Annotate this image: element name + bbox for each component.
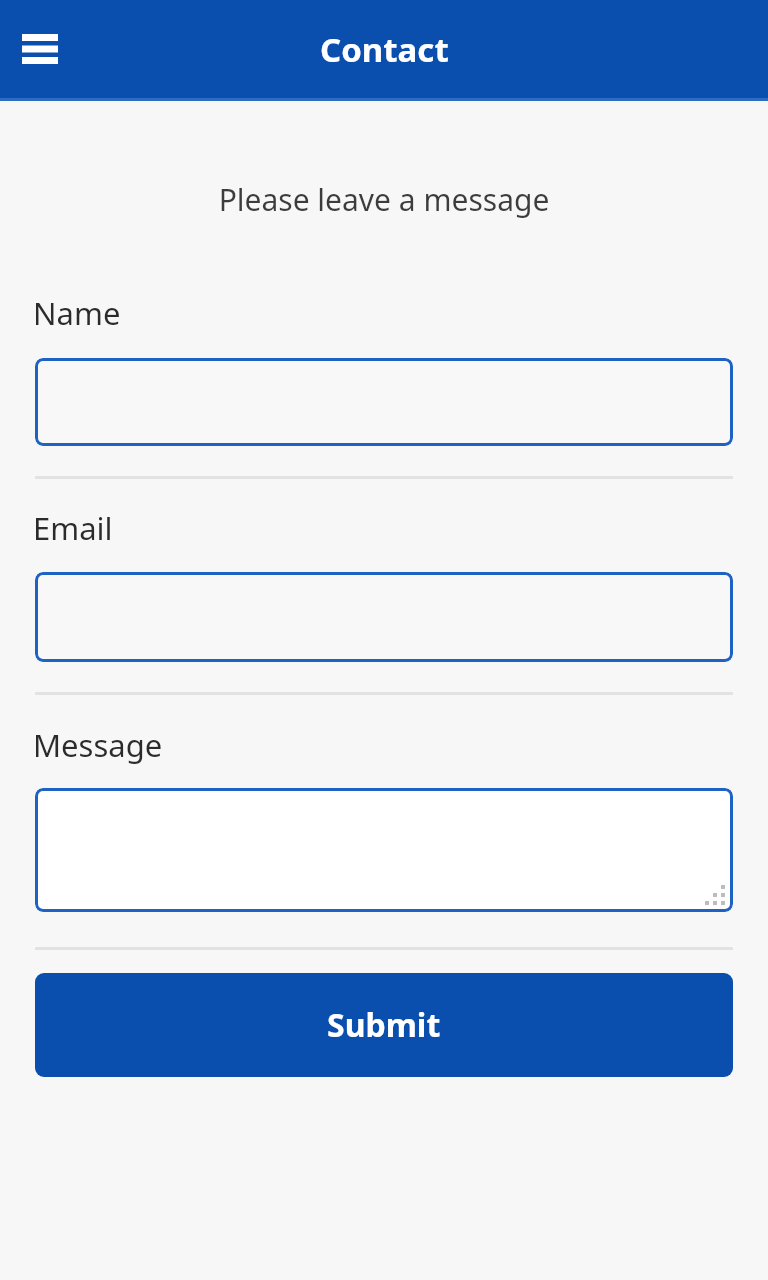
staticText: Contact <box>320 27 449 72</box>
staticText: Please leave a message <box>0 179 768 220</box>
button[interactable]: Name input field <box>35 358 733 446</box>
button[interactable]: Submit <box>35 973 733 1077</box>
staticText: Email <box>33 507 113 549</box>
staticText: Submit <box>327 1003 441 1047</box>
button[interactable]: Message input field <box>35 788 733 912</box>
button[interactable]: Open navigation menu <box>8 17 72 81</box>
button[interactable]: Email input field <box>35 572 733 662</box>
staticText: Name <box>33 292 121 334</box>
staticText: Message <box>33 724 163 766</box>
